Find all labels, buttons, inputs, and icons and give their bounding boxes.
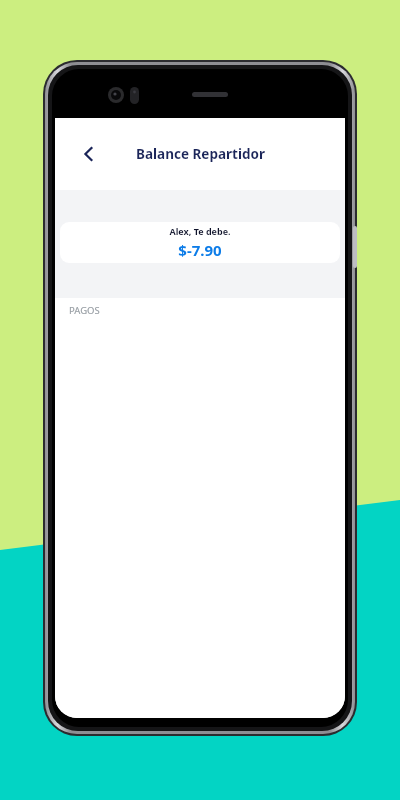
- staticText: PAGOS: [69, 304, 100, 317]
- staticText: Alex, Te debe.: [169, 225, 231, 237]
- button[interactable]: Alex, Te debe.: [60, 222, 340, 263]
- staticText: $-7.90: [178, 240, 222, 260]
- staticText: Balance Repartidor: [136, 145, 265, 163]
- button[interactable]: Back: [67, 132, 111, 176]
